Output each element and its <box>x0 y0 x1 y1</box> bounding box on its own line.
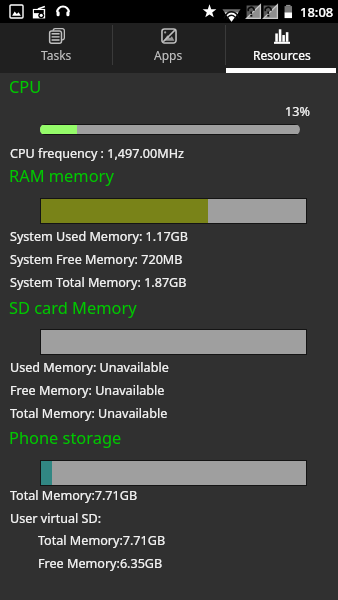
button[interactable]: Resources <box>225 23 338 73</box>
button[interactable]: Tasks <box>0 23 112 73</box>
other: Headset connected <box>56 4 70 18</box>
other: FM radio playing <box>32 5 46 19</box>
staticText: Free Memory:6.35GB <box>38 555 163 572</box>
staticText: Phone storage <box>9 426 122 448</box>
staticText: System Total Memory: 1.87GB <box>10 274 187 291</box>
staticText: Total Memory:7.71GB <box>10 487 138 504</box>
staticText: CPU frequency : 1,497.00MHz <box>10 145 184 162</box>
staticText: System Free Memory: 720MB <box>10 251 183 268</box>
staticText: Apps <box>154 47 183 63</box>
staticText: Free Memory: Unavailable <box>10 382 165 399</box>
other: Screenshot captured <box>10 5 23 18</box>
staticText: System Used Memory: 1.17GB <box>10 228 188 245</box>
staticText: RAM memory <box>9 164 114 186</box>
button[interactable]: Apps <box>112 23 225 73</box>
staticText: User virtual SD: <box>10 510 102 527</box>
staticText: Resources <box>253 47 311 63</box>
staticText: Total Memory:7.71GB <box>38 532 166 549</box>
staticText: Tasks <box>41 47 72 63</box>
other: SIM 2 no signal <box>263 4 278 19</box>
staticText: Used Memory: Unavailable <box>10 359 169 376</box>
other: Wi-Fi signal <box>222 5 241 24</box>
other: Battery <box>283 4 294 19</box>
staticText: 18:08 <box>300 3 334 21</box>
staticText: Total Memory: Unavailable <box>10 405 168 422</box>
other: SIM 1 no signal <box>246 4 261 19</box>
staticText: CPU <box>9 75 42 97</box>
staticText: SD card Memory <box>9 296 137 318</box>
staticText: 13% <box>285 103 310 120</box>
other: Starred <box>202 4 217 19</box>
